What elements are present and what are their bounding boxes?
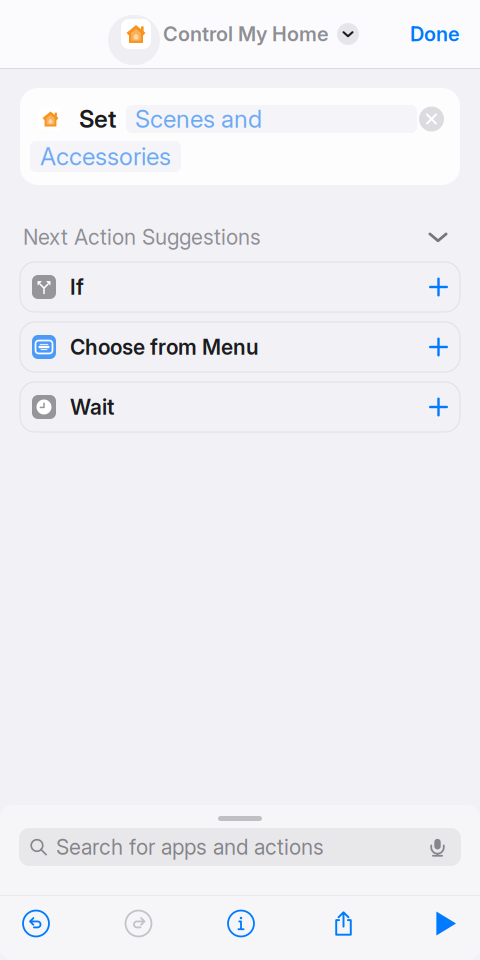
staticText: Scenes and (135, 105, 262, 133)
staticText: If (70, 275, 84, 299)
button[interactable]: Undo (12, 899, 60, 947)
staticText: Control My Home (163, 22, 329, 46)
button[interactable]: Collapse suggestions (425, 224, 460, 250)
button[interactable]: Wait (20, 382, 460, 432)
staticText: Choose from Menu (70, 335, 259, 359)
button[interactable]: Search for apps and actions (19, 828, 461, 866)
staticText: Accessories (40, 142, 171, 171)
staticText: Set (79, 105, 116, 133)
button[interactable]: Set (20, 88, 460, 185)
button[interactable]: If (20, 262, 460, 312)
staticText: Search for apps and actions (56, 835, 324, 859)
staticText: Done (410, 22, 460, 46)
button[interactable]: Control My Home (121, 19, 359, 49)
staticText: Next Action Suggestions (23, 225, 261, 249)
button[interactable]: Run (422, 900, 468, 946)
button[interactable]: Details (217, 899, 265, 947)
button[interactable]: Done (390, 4, 480, 64)
button[interactable]: Share (319, 899, 367, 947)
button[interactable]: Redo (114, 899, 162, 947)
staticText: Wait (70, 395, 114, 419)
button[interactable]: Choose from Menu (20, 322, 460, 372)
